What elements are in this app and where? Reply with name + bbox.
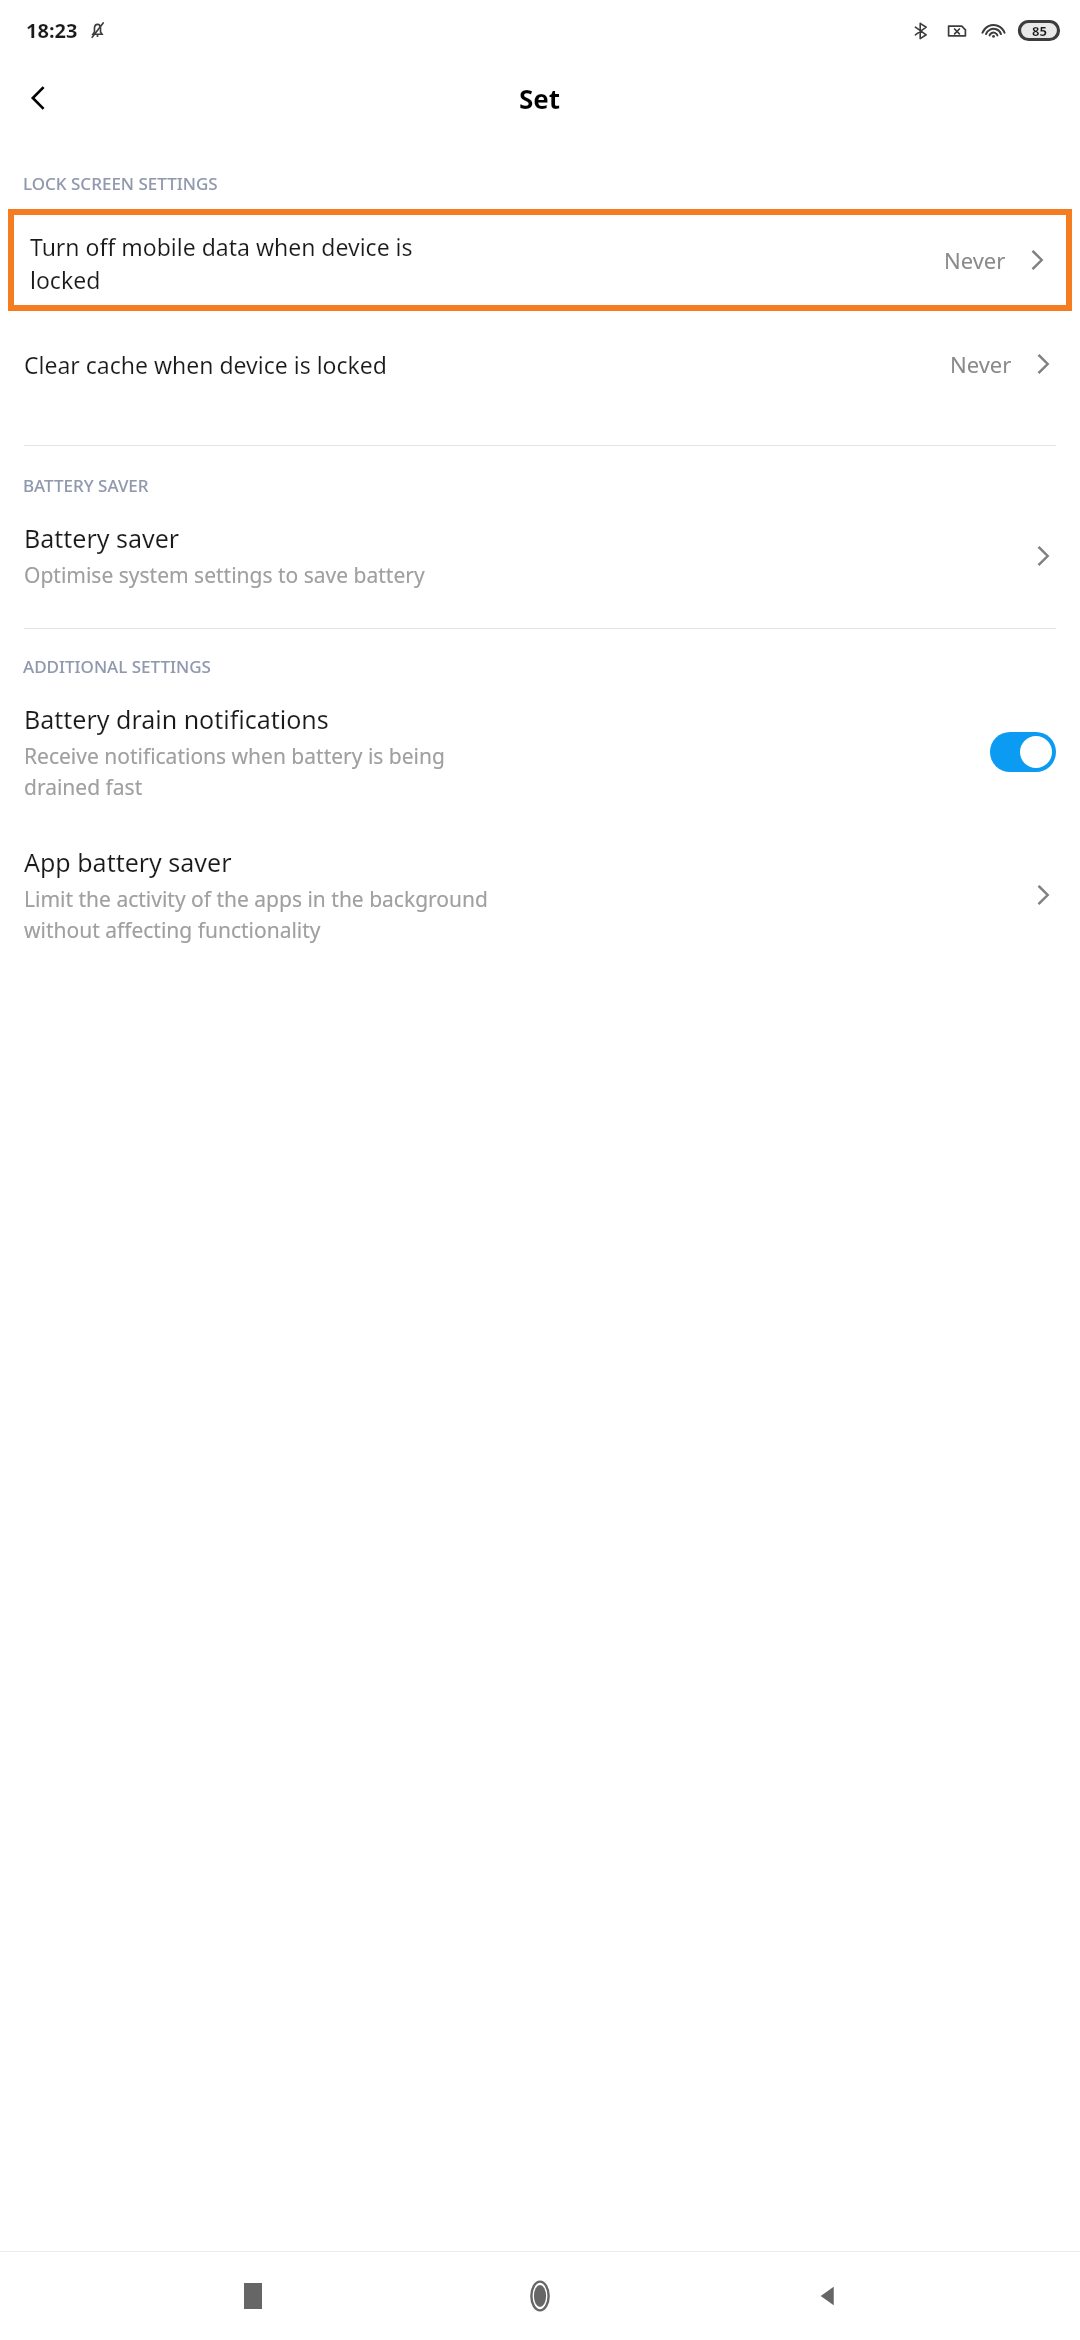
- button[interactable]: Clear cache when device is locked: [0, 311, 1080, 417]
- staticText: Battery drain notifications: [24, 702, 329, 736]
- staticText: Turn off mobile data when device is lock…: [30, 231, 413, 289]
- staticText: 85: [1032, 22, 1047, 40]
- button[interactable]: Back: [793, 2261, 863, 2331]
- staticText: Never: [944, 245, 1006, 275]
- button[interactable]: Back: [10, 70, 66, 126]
- staticText: Receive notifications when battery is be…: [24, 742, 445, 801]
- button[interactable]: Battery saver: [0, 507, 1080, 604]
- button[interactable]: Battery drain notifications: [0, 688, 1080, 815]
- button[interactable]: Battery drain notifications toggle: [990, 732, 1056, 772]
- staticText: Never: [950, 349, 1012, 379]
- button[interactable]: Home: [505, 2261, 575, 2331]
- staticText: LOCK SCREEN SETTINGS: [23, 172, 218, 195]
- staticText: Clear cache when device is locked: [24, 349, 387, 380]
- button[interactable]: Recents: [218, 2261, 288, 2331]
- staticText: BATTERY SAVER: [23, 474, 149, 497]
- button[interactable]: App battery saver: [0, 831, 1080, 958]
- staticText: Optimise system settings to save battery: [24, 561, 425, 590]
- staticText: 18:23: [26, 17, 78, 44]
- staticText: Set: [519, 81, 561, 116]
- button[interactable]: Turn off mobile data when device is lock…: [14, 215, 1066, 305]
- staticText: Limit the activity of the apps in the ba…: [24, 885, 488, 944]
- staticText: Battery saver: [24, 521, 180, 555]
- staticText: ADDITIONAL SETTINGS: [23, 655, 211, 678]
- staticText: App battery saver: [24, 845, 232, 879]
